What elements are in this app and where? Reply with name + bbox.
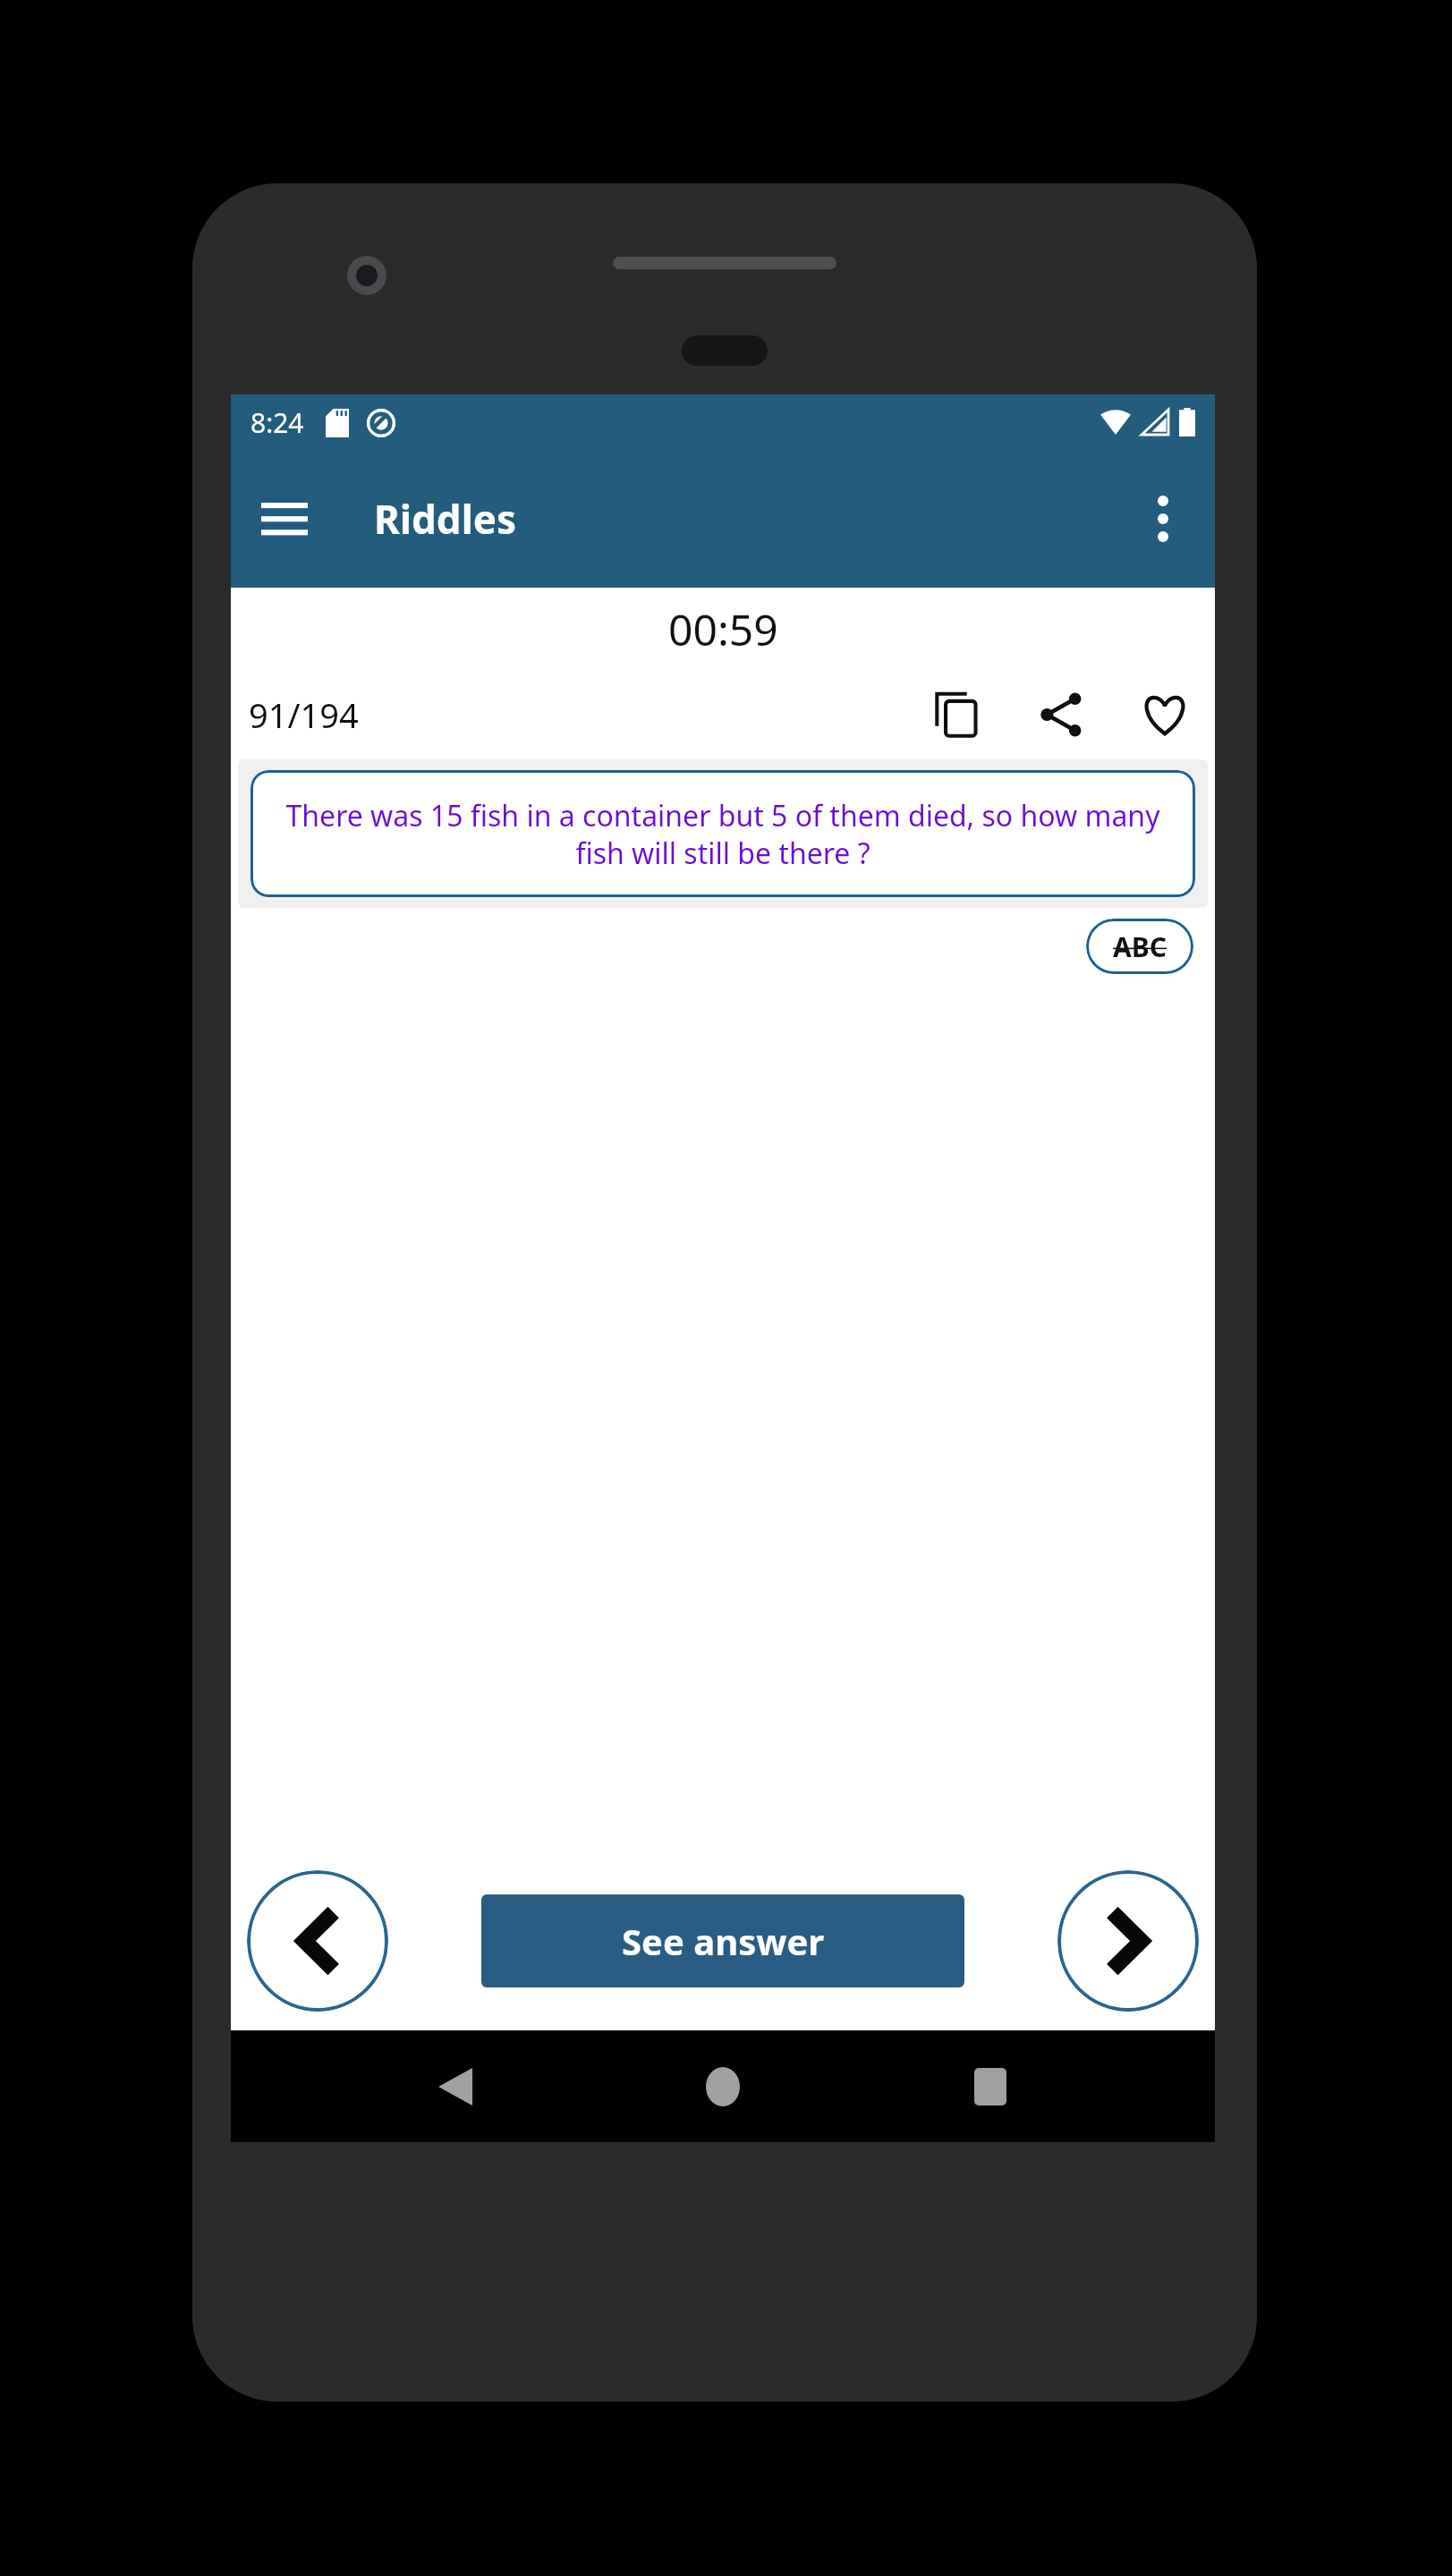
button[interactable]: Copy riddle	[920, 677, 995, 752]
button[interactable]: Previous riddle	[247, 1870, 388, 2012]
button[interactable]: Back	[412, 2044, 498, 2130]
button[interactable]: Open navigation menu	[250, 485, 318, 553]
staticText: 91/194	[249, 691, 359, 738]
staticText: ABC	[1113, 928, 1167, 965]
button[interactable]: ABC	[1086, 919, 1193, 974]
button[interactable]: Next riddle	[1057, 1870, 1199, 2012]
staticText: There was 15 fish in a container but 5 o…	[267, 796, 1179, 872]
button[interactable]: More options	[1129, 485, 1197, 553]
button[interactable]: See answer	[481, 1894, 964, 1987]
button[interactable]: Share riddle	[1023, 677, 1099, 752]
staticText: 00:59	[668, 600, 778, 658]
staticText: 8:24	[250, 404, 304, 441]
button[interactable]: Recent apps	[947, 2044, 1033, 2130]
button[interactable]: Add to favourites	[1127, 677, 1202, 752]
staticText: Riddles	[374, 492, 517, 546]
button[interactable]: Home	[680, 2044, 766, 2130]
button[interactable]: There was 15 fish in a container but 5 o…	[250, 770, 1195, 897]
staticText: See answer	[622, 1917, 825, 1965]
